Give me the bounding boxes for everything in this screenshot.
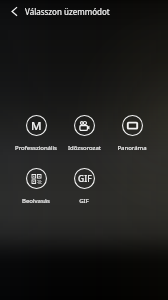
button[interactable]: Back bbox=[0, 0, 22, 22]
button[interactable]: Panoráma bbox=[108, 115, 156, 152]
staticText: GIF bbox=[78, 173, 92, 185]
staticText: Professzionális bbox=[15, 144, 57, 152]
button[interactable]: Beolvasás bbox=[12, 168, 60, 205]
button[interactable]: Időzsorozat bbox=[60, 115, 108, 152]
staticText: GIF bbox=[79, 197, 89, 205]
staticText: Panoráma bbox=[117, 144, 147, 152]
button[interactable]: M bbox=[12, 115, 60, 152]
staticText: Beolvasás bbox=[22, 197, 50, 205]
staticText: Időzsorozat bbox=[68, 144, 101, 152]
staticText: M bbox=[31, 118, 42, 134]
staticText: Válasszon üzemmódot bbox=[25, 6, 110, 17]
button[interactable]: GIF bbox=[60, 168, 108, 205]
